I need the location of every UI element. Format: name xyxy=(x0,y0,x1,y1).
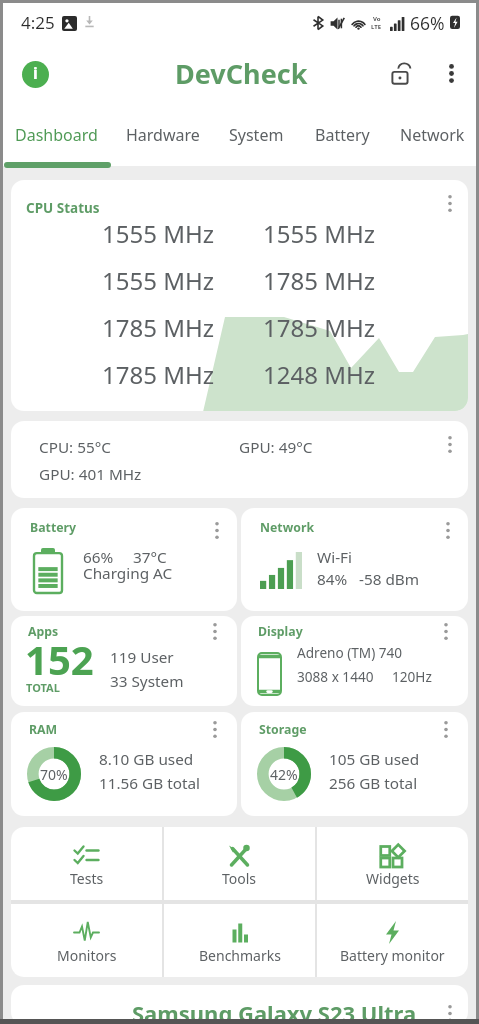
staticText: Battery xyxy=(30,519,77,536)
button[interactable]: Lock xyxy=(382,53,422,93)
staticText: Widgets xyxy=(366,869,420,888)
button[interactable]: Tools xyxy=(164,827,315,900)
staticText: 256 GB total xyxy=(329,773,418,794)
staticText: 1555 MHz xyxy=(102,264,214,290)
staticText: 1785 MHz xyxy=(102,358,214,384)
staticText: 152 xyxy=(25,632,94,686)
button[interactable]: More xyxy=(438,191,462,215)
staticText: System xyxy=(229,124,284,146)
button[interactable]: More xyxy=(436,518,460,542)
button[interactable]: More xyxy=(203,619,227,643)
staticText: Tools xyxy=(222,869,257,888)
staticText: CPU: 55°C xyxy=(39,437,111,458)
staticText: 1785 MHz xyxy=(263,264,375,290)
button[interactable]: More xyxy=(11,421,468,498)
button[interactable]: App info xyxy=(16,55,54,93)
button[interactable]: Tests xyxy=(11,827,162,900)
staticText: Wi-Fi xyxy=(317,547,352,568)
staticText: TOTAL xyxy=(26,680,60,695)
staticText: 120Hz xyxy=(392,667,432,686)
staticText: 84% xyxy=(317,569,348,590)
button[interactable]: System xyxy=(218,108,295,162)
staticText: 8.10 GB used xyxy=(99,749,194,770)
staticText: 66% xyxy=(83,547,114,568)
button[interactable]: Network xyxy=(241,508,468,611)
staticText: GPU: 401 MHz xyxy=(39,464,142,485)
staticText: Hardware xyxy=(126,124,200,146)
staticText: Dashboard xyxy=(15,124,98,146)
staticText: 70% xyxy=(40,765,68,784)
staticText: Monitors xyxy=(57,946,117,965)
staticText: 42% xyxy=(270,765,298,784)
staticText: 4:25 xyxy=(21,11,55,34)
button[interactable]: RAM xyxy=(11,712,237,816)
button[interactable]: More options xyxy=(431,53,471,93)
button[interactable]: More xyxy=(438,1001,462,1024)
staticText: 1555 MHz xyxy=(102,217,214,243)
staticText: 1785 MHz xyxy=(102,311,214,337)
button[interactable]: More xyxy=(434,619,458,643)
button[interactable]: Dashboard xyxy=(6,108,107,162)
staticText: GPU: 49°C xyxy=(239,437,313,458)
staticText: Samsung Galaxy S23 Ultra xyxy=(132,998,417,1024)
button[interactable]: Storage xyxy=(241,712,468,816)
staticText: Adreno (TM) 740 xyxy=(297,643,403,662)
staticText: Tests xyxy=(70,869,104,888)
button[interactable]: Samsung Galaxy S23 Ultra xyxy=(11,985,468,1024)
staticText: RAM xyxy=(29,721,58,738)
staticText: Display xyxy=(258,623,303,640)
staticText: 119 User xyxy=(110,647,174,668)
staticText: Network xyxy=(260,519,315,536)
staticText: 11.56 GB total xyxy=(99,773,200,794)
staticText: 66% xyxy=(410,11,445,35)
staticText: Battery monitor xyxy=(340,946,445,965)
staticText: 3088 x 1440 xyxy=(297,667,374,686)
staticText: 1555 MHz xyxy=(263,217,375,243)
staticText: Battery xyxy=(315,124,370,146)
staticText: 105 GB used xyxy=(329,749,420,770)
staticText: 1785 MHz xyxy=(263,311,375,337)
staticText: 33 System xyxy=(110,671,184,692)
staticText: -58 dBm xyxy=(359,569,420,590)
button[interactable]: More xyxy=(205,518,229,542)
button[interactable]: More xyxy=(203,717,227,741)
button[interactable]: Battery monitor xyxy=(317,904,468,977)
button[interactable]: CPU Status xyxy=(11,180,468,411)
button[interactable]: Network xyxy=(389,108,475,162)
staticText: Apps xyxy=(28,623,59,640)
button[interactable]: Battery xyxy=(11,508,237,611)
button[interactable]: Widgets xyxy=(317,827,468,900)
staticText: 37°C xyxy=(133,547,167,568)
staticText: Storage xyxy=(259,721,307,738)
button[interactable]: Display xyxy=(241,616,468,706)
staticText: DevCheck xyxy=(175,55,308,92)
staticText: Benchmarks xyxy=(199,946,281,965)
staticText: LTE xyxy=(371,23,382,31)
button[interactable]: Hardware xyxy=(113,108,213,162)
staticText: i xyxy=(33,62,38,84)
button[interactable]: Monitors xyxy=(11,904,162,977)
button[interactable]: Battery xyxy=(303,108,382,162)
staticText: 1248 MHz xyxy=(263,358,375,384)
staticText: CPU Status xyxy=(26,199,100,217)
button[interactable]: Apps xyxy=(11,616,237,706)
button[interactable]: Benchmarks xyxy=(164,904,315,977)
staticText: Charging AC xyxy=(83,563,173,584)
button[interactable]: More xyxy=(434,717,458,741)
staticText: Vo xyxy=(373,15,381,23)
button[interactable]: More xyxy=(438,432,462,456)
staticText: Network xyxy=(400,124,465,146)
